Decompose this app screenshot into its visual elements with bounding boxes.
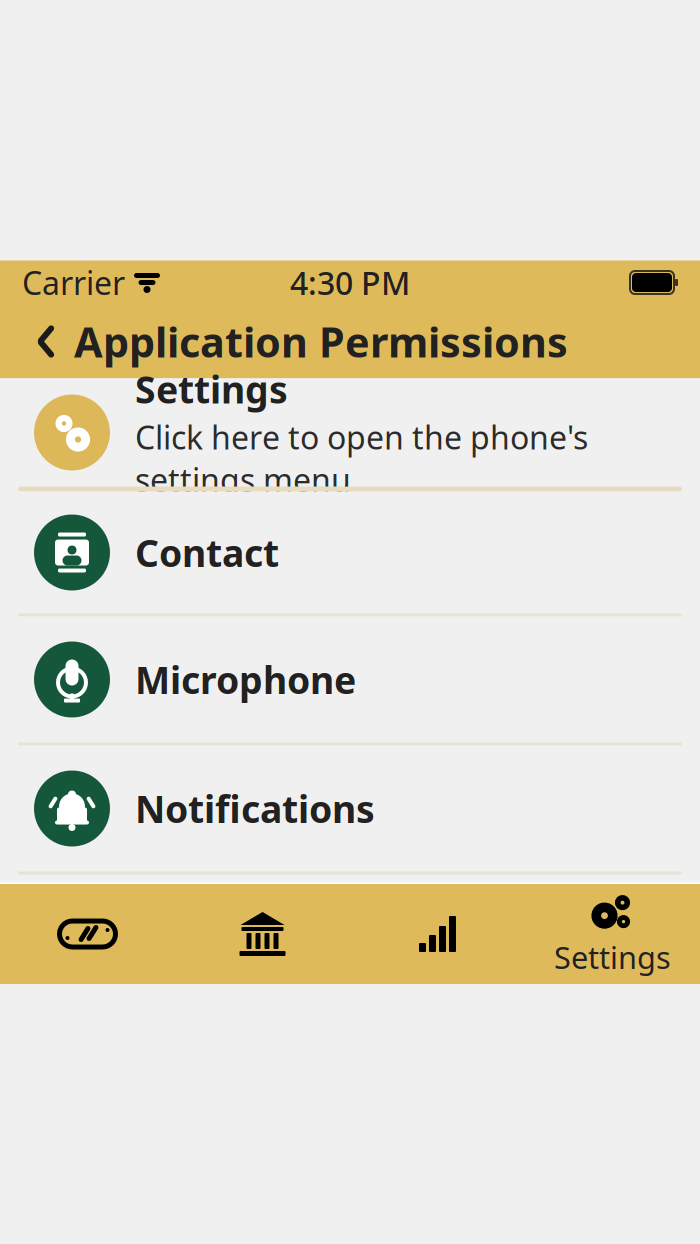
staticText: Application Permissions xyxy=(74,314,568,369)
button[interactable]: Settings xyxy=(0,378,700,486)
staticText: Contact xyxy=(135,528,279,577)
button[interactable]: Microphone xyxy=(0,616,700,742)
staticText: Microphone xyxy=(135,655,356,704)
button[interactable]: Bank xyxy=(175,884,350,984)
button[interactable]: Back xyxy=(18,312,74,370)
button[interactable]: Settings xyxy=(525,884,700,984)
staticText: Settings xyxy=(554,937,671,977)
staticText: Click here to open the phone's settings … xyxy=(135,416,588,501)
button[interactable]: Partners xyxy=(0,884,175,984)
staticText: Carrier xyxy=(22,261,125,304)
button[interactable]: Notifications xyxy=(0,745,700,871)
button[interactable]: Contact xyxy=(0,491,700,613)
staticText: 4:30 PM xyxy=(290,261,410,304)
button[interactable]: Statistics xyxy=(350,884,525,984)
staticText: Notifications xyxy=(135,784,375,833)
staticText: Settings xyxy=(135,364,288,414)
